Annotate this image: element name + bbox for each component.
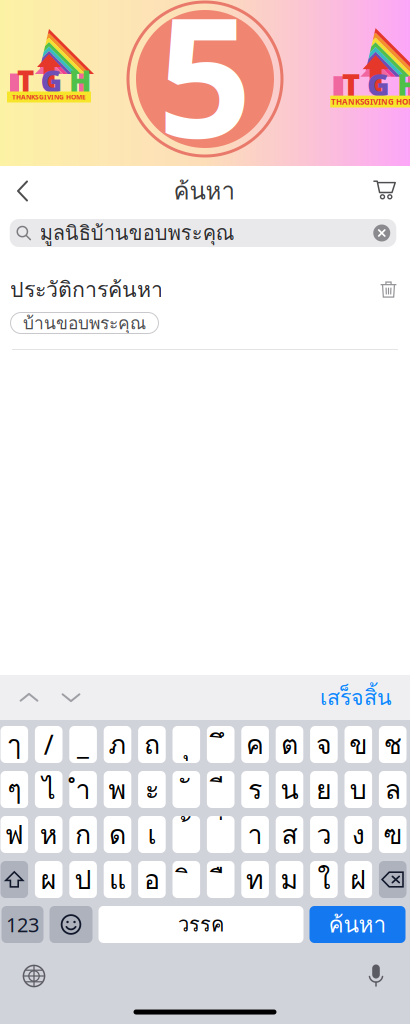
button[interactable]: ล — [379, 771, 406, 808]
button[interactable]: ส — [276, 816, 303, 853]
staticText: ค้นหา — [173, 172, 234, 210]
button[interactable]: Delete history — [380, 280, 397, 298]
button[interactable]: Emoji — [49, 906, 92, 943]
staticText: ิ — [183, 859, 190, 900]
button[interactable]: จ — [310, 726, 338, 763]
staticText: ฃ — [383, 814, 402, 855]
staticText: G — [367, 64, 390, 105]
staticText: ด — [109, 814, 126, 855]
staticText: พ — [108, 769, 126, 810]
staticText: แ — [109, 859, 126, 900]
button[interactable]: ้ — [172, 816, 200, 853]
button[interactable]: ต — [276, 726, 303, 763]
button[interactable]: แ — [104, 861, 131, 898]
button[interactable]: ี — [207, 771, 234, 808]
button[interactable]: ใ — [310, 861, 338, 898]
button[interactable]: ห — [35, 816, 62, 853]
staticText: 5 — [157, 0, 252, 183]
button[interactable]: ย — [310, 771, 338, 808]
button[interactable]: ภ — [104, 726, 131, 763]
button[interactable]: ช — [379, 726, 406, 763]
staticText: 123 — [6, 911, 39, 938]
button[interactable]: ุ — [172, 726, 200, 763]
button[interactable]: ค — [241, 726, 269, 763]
staticText: ผ — [41, 859, 57, 900]
staticText: ฝ — [350, 859, 366, 900]
staticText: ้ — [183, 814, 190, 855]
button[interactable]: Cart — [364, 168, 406, 214]
staticText: ก — [75, 814, 91, 855]
staticText: ข — [349, 724, 367, 765]
button[interactable]: _ — [69, 726, 97, 763]
button[interactable]: ฟ — [0, 816, 28, 853]
staticText: _ — [77, 727, 89, 762]
button[interactable]: Delete — [379, 861, 406, 898]
button[interactable]: า — [241, 816, 269, 853]
button[interactable]: ด — [104, 816, 131, 853]
button[interactable]: ่ — [207, 816, 234, 853]
button[interactable]: บ — [344, 771, 372, 808]
button[interactable]: ป — [69, 861, 97, 898]
button[interactable]: Shift — [0, 861, 28, 898]
button[interactable]: ผ — [35, 861, 62, 898]
button[interactable]: ก — [69, 816, 97, 853]
button[interactable]: 123 — [1, 906, 43, 943]
staticText: ค้นหา — [328, 907, 386, 942]
staticText: ฟ — [5, 814, 24, 855]
button[interactable]: เ — [138, 816, 166, 853]
button[interactable]: Clear — [373, 224, 390, 241]
button[interactable]: Next keyboard — [12, 954, 56, 998]
button[interactable]: พ — [104, 771, 131, 808]
button[interactable]: วรรค — [98, 906, 303, 943]
button[interactable]: Dictate — [354, 954, 398, 998]
staticText: ั — [183, 769, 190, 810]
staticText: ร — [248, 769, 262, 810]
button[interactable]: ร — [241, 771, 269, 808]
staticText: T — [17, 61, 34, 100]
button[interactable]: ท — [241, 861, 269, 898]
button[interactable]: ื — [207, 861, 234, 898]
button[interactable]: เสร็จสิ้น — [312, 675, 400, 720]
staticText: ๆ — [7, 769, 21, 810]
button[interactable]: ะ — [138, 771, 166, 808]
staticText: ะ — [145, 769, 159, 810]
button[interactable]: ๅ — [0, 726, 28, 763]
button[interactable]: ำ — [69, 771, 97, 808]
button[interactable]: ง — [344, 816, 372, 853]
staticText: จ — [316, 724, 332, 765]
staticText: ภ — [108, 724, 126, 765]
button[interactable]: ิ — [172, 861, 200, 898]
staticText: THANKSGIVING HOME — [331, 96, 410, 107]
button[interactable]: น — [276, 771, 303, 808]
button[interactable]: Back — [2, 168, 44, 214]
button[interactable]: ว — [310, 816, 338, 853]
staticText: วรรค — [178, 909, 224, 940]
button[interactable]: / — [35, 726, 62, 763]
staticText: T — [342, 64, 360, 105]
staticText: ต — [281, 724, 298, 765]
staticText: บ — [350, 769, 367, 810]
staticText: ส — [281, 814, 297, 855]
button[interactable]: Next field — [50, 675, 92, 720]
button[interactable]: ม — [276, 861, 303, 898]
button[interactable]: ค้นหา — [309, 906, 405, 943]
button[interactable]: ๆ — [0, 771, 28, 808]
staticText: ื — [217, 859, 224, 900]
button[interactable]: บ้านขอบพระคุณ — [10, 312, 159, 334]
staticText: ุ — [183, 724, 190, 765]
button[interactable]: Previous field — [8, 675, 50, 720]
button[interactable]: ฃ — [379, 816, 406, 853]
button[interactable]: ั — [172, 771, 200, 808]
button[interactable]: ไ — [35, 771, 62, 808]
button[interactable]: ข — [344, 726, 372, 763]
staticText: THANKSGIVING HOME — [12, 93, 86, 101]
button[interactable]: อ — [138, 861, 166, 898]
staticText: มูลนิธิบ้านขอบพระคุณ — [40, 217, 235, 248]
staticText: ท — [246, 859, 264, 900]
staticText: น — [280, 769, 298, 810]
staticText: ง — [352, 814, 365, 855]
staticText: ค — [246, 724, 264, 765]
button[interactable]: ถ — [138, 726, 166, 763]
button[interactable]: ฝ — [344, 861, 372, 898]
button[interactable]: ึ — [207, 726, 234, 763]
